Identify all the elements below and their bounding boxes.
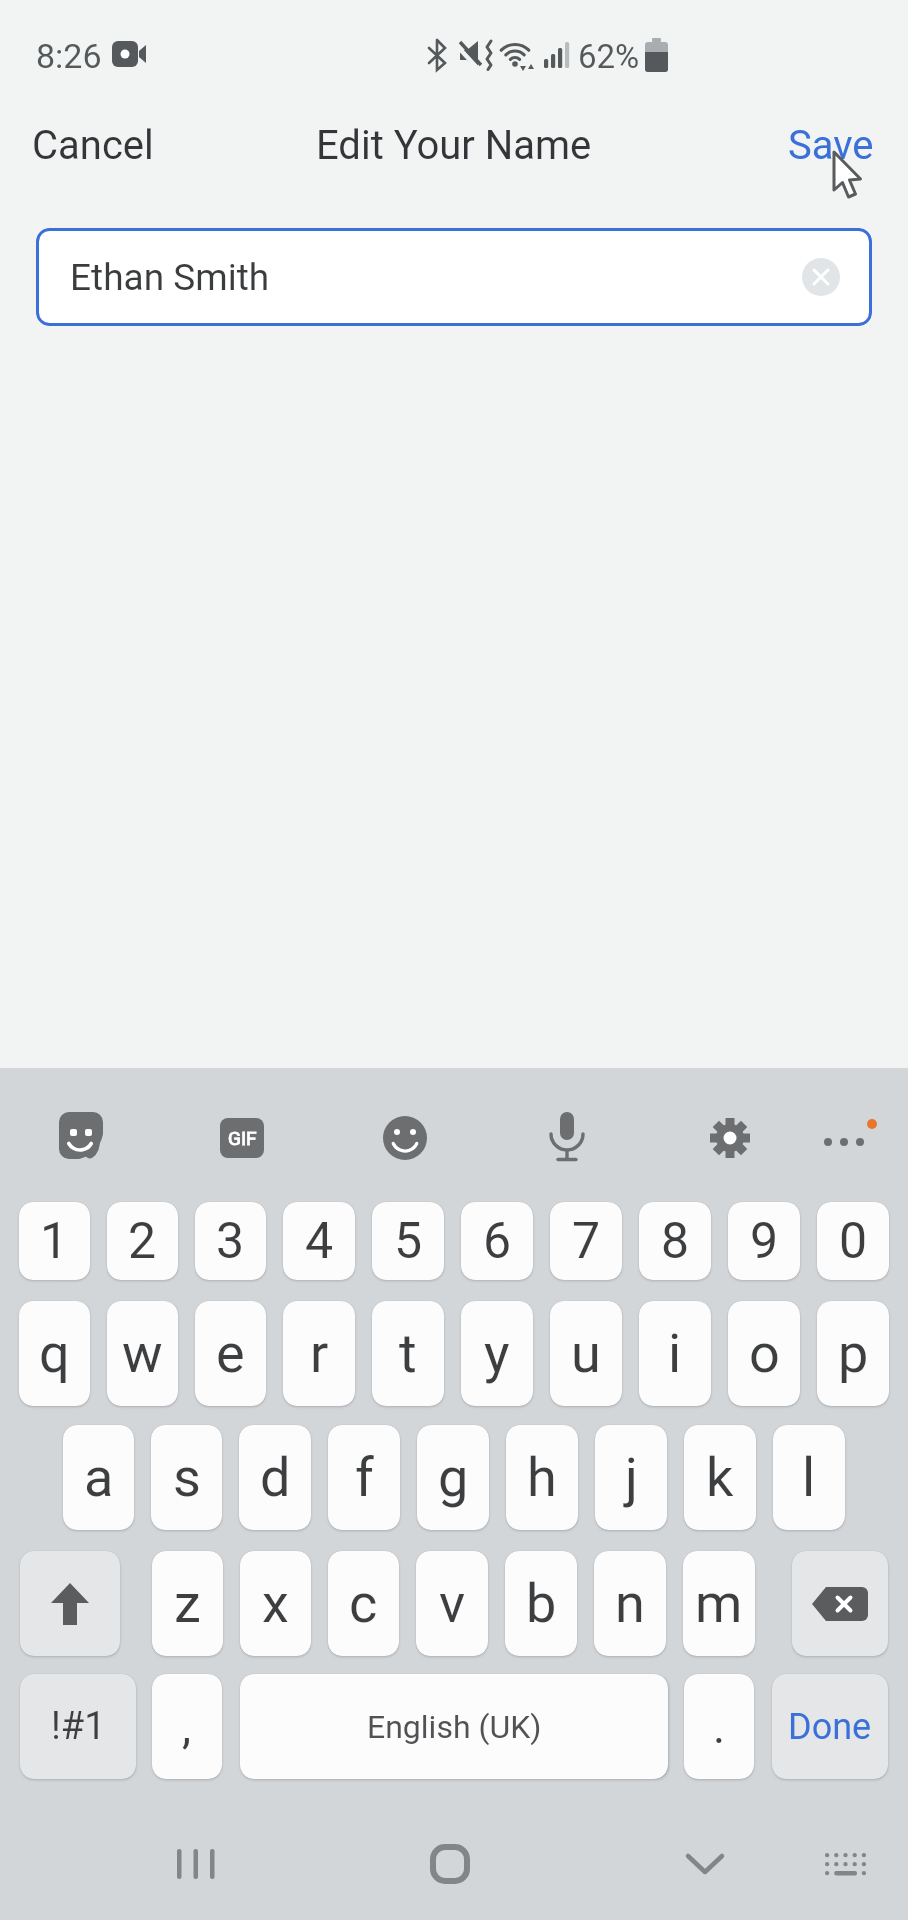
staticText: . xyxy=(713,1700,726,1754)
staticText: n xyxy=(615,1572,645,1635)
staticText: 7 xyxy=(572,1212,601,1271)
button[interactable]: j xyxy=(595,1425,667,1530)
button[interactable]: i xyxy=(639,1301,711,1406)
button[interactable]: p xyxy=(817,1301,889,1406)
button[interactable] xyxy=(160,1836,232,1892)
button[interactable]: Ethan Smith xyxy=(36,228,872,326)
staticText: p xyxy=(838,1322,869,1385)
button[interactable]: o xyxy=(728,1301,800,1406)
staticText: f xyxy=(355,1446,374,1509)
button[interactable]: r xyxy=(283,1301,355,1406)
button[interactable]: z xyxy=(152,1551,223,1656)
button[interactable]: 6 xyxy=(461,1202,533,1280)
staticText: Cancel xyxy=(32,122,154,169)
staticText: x xyxy=(262,1572,289,1635)
staticText: 4 xyxy=(305,1212,334,1271)
staticText: 3 xyxy=(216,1212,245,1271)
button[interactable]: , xyxy=(152,1674,222,1779)
button[interactable] xyxy=(669,1836,741,1892)
button[interactable]: . xyxy=(684,1674,754,1779)
button[interactable]: m xyxy=(683,1551,755,1656)
button[interactable]: d xyxy=(239,1425,311,1530)
staticText: z xyxy=(174,1572,201,1635)
button[interactable] xyxy=(383,1116,427,1160)
button[interactable]: e xyxy=(195,1301,266,1406)
button[interactable] xyxy=(822,1116,878,1160)
staticText: g xyxy=(438,1446,469,1509)
staticText: v xyxy=(439,1572,466,1635)
button[interactable]: 5 xyxy=(372,1202,444,1280)
button[interactable]: k xyxy=(684,1425,756,1530)
staticText: 62% xyxy=(578,37,640,76)
staticText: o xyxy=(749,1322,780,1385)
button[interactable]: t xyxy=(372,1301,444,1406)
button[interactable]: English (UK) xyxy=(240,1674,668,1779)
button[interactable]: c xyxy=(328,1551,399,1656)
button[interactable] xyxy=(802,258,840,296)
button[interactable] xyxy=(708,1116,752,1160)
button[interactable] xyxy=(812,1836,878,1892)
staticText: u xyxy=(571,1322,601,1385)
staticText: a xyxy=(84,1446,114,1509)
button[interactable]: GIF xyxy=(220,1118,264,1158)
button[interactable]: 2 xyxy=(107,1202,178,1280)
button[interactable]: v xyxy=(416,1551,488,1656)
button[interactable]: a xyxy=(63,1425,134,1530)
button[interactable]: s xyxy=(151,1425,222,1530)
staticText: 2 xyxy=(128,1212,157,1271)
button[interactable]: 4 xyxy=(283,1202,355,1280)
button[interactable]: b xyxy=(505,1551,577,1656)
staticText: English (UK) xyxy=(367,1708,542,1746)
button[interactable] xyxy=(20,1551,120,1656)
staticText: 8 xyxy=(661,1212,690,1271)
button[interactable]: q xyxy=(19,1301,90,1406)
button[interactable]: 9 xyxy=(728,1202,800,1280)
staticText: Save xyxy=(788,122,874,169)
button[interactable]: x xyxy=(240,1551,311,1656)
button[interactable]: 7 xyxy=(550,1202,622,1280)
button[interactable]: 8 xyxy=(639,1202,711,1280)
button[interactable]: Done xyxy=(772,1674,888,1779)
button[interactable]: 0 xyxy=(817,1202,889,1280)
staticText: Edit Your Name xyxy=(316,122,592,169)
staticText: d xyxy=(260,1446,291,1509)
staticText: i xyxy=(668,1322,682,1385)
staticText: k xyxy=(706,1446,734,1509)
staticText: s xyxy=(173,1446,201,1509)
staticText: GIF xyxy=(228,1127,257,1149)
staticText: 1 xyxy=(40,1212,69,1271)
staticText: 6 xyxy=(483,1212,512,1271)
staticText: c xyxy=(349,1572,378,1635)
button[interactable] xyxy=(414,1836,486,1892)
staticText: 8:26 xyxy=(36,36,102,76)
button[interactable]: f xyxy=(328,1425,400,1530)
staticText: 5 xyxy=(394,1212,423,1271)
staticText: !#1 xyxy=(51,1704,106,1749)
button[interactable]: l xyxy=(773,1425,845,1530)
staticText: y xyxy=(484,1322,510,1385)
staticText: q xyxy=(39,1322,70,1385)
button[interactable]: Save xyxy=(776,110,886,181)
staticText: w xyxy=(122,1322,163,1385)
button[interactable]: w xyxy=(107,1301,178,1406)
staticText: j xyxy=(625,1446,638,1509)
staticText: t xyxy=(399,1322,417,1385)
button[interactable]: y xyxy=(461,1301,533,1406)
button[interactable]: !#1 xyxy=(20,1674,136,1779)
button[interactable]: 1 xyxy=(19,1202,90,1280)
staticText: b xyxy=(526,1572,557,1635)
staticText: h xyxy=(527,1446,557,1509)
button[interactable]: Cancel xyxy=(20,110,166,181)
button[interactable] xyxy=(792,1551,888,1656)
button[interactable]: g xyxy=(417,1425,489,1530)
staticText: l xyxy=(802,1446,816,1509)
button[interactable]: u xyxy=(550,1301,622,1406)
staticText: Ethan Smith xyxy=(70,256,270,299)
staticText: m xyxy=(695,1572,743,1635)
button[interactable]: 3 xyxy=(195,1202,266,1280)
button[interactable]: h xyxy=(506,1425,578,1530)
button[interactable] xyxy=(549,1112,585,1164)
button[interactable] xyxy=(59,1112,103,1160)
button[interactable]: n xyxy=(594,1551,666,1656)
staticText: e xyxy=(216,1322,245,1385)
